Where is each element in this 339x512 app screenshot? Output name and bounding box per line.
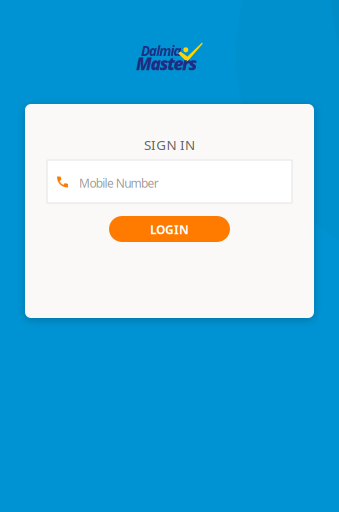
staticText: Mobile Number <box>79 175 159 191</box>
button[interactable]: LOGIN <box>109 216 230 242</box>
staticText: SIGN IN <box>144 136 195 154</box>
staticText: Dalmia <box>141 42 181 60</box>
staticText: Masters <box>136 52 197 75</box>
staticText: LOGIN <box>150 221 189 237</box>
button[interactable]: Mobile Number <box>47 160 292 203</box>
